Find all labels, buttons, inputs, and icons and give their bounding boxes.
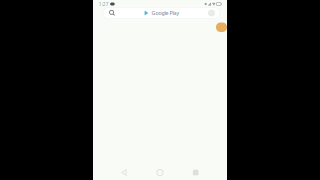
staticText: Google Play	[152, 9, 180, 17]
button[interactable]: Google Play	[103, 7, 220, 18]
button[interactable]: Back	[117, 165, 131, 180]
staticText: 1:27	[98, 0, 108, 8]
button[interactable]: Home	[153, 165, 167, 180]
button[interactable]: Recents	[189, 166, 202, 179]
